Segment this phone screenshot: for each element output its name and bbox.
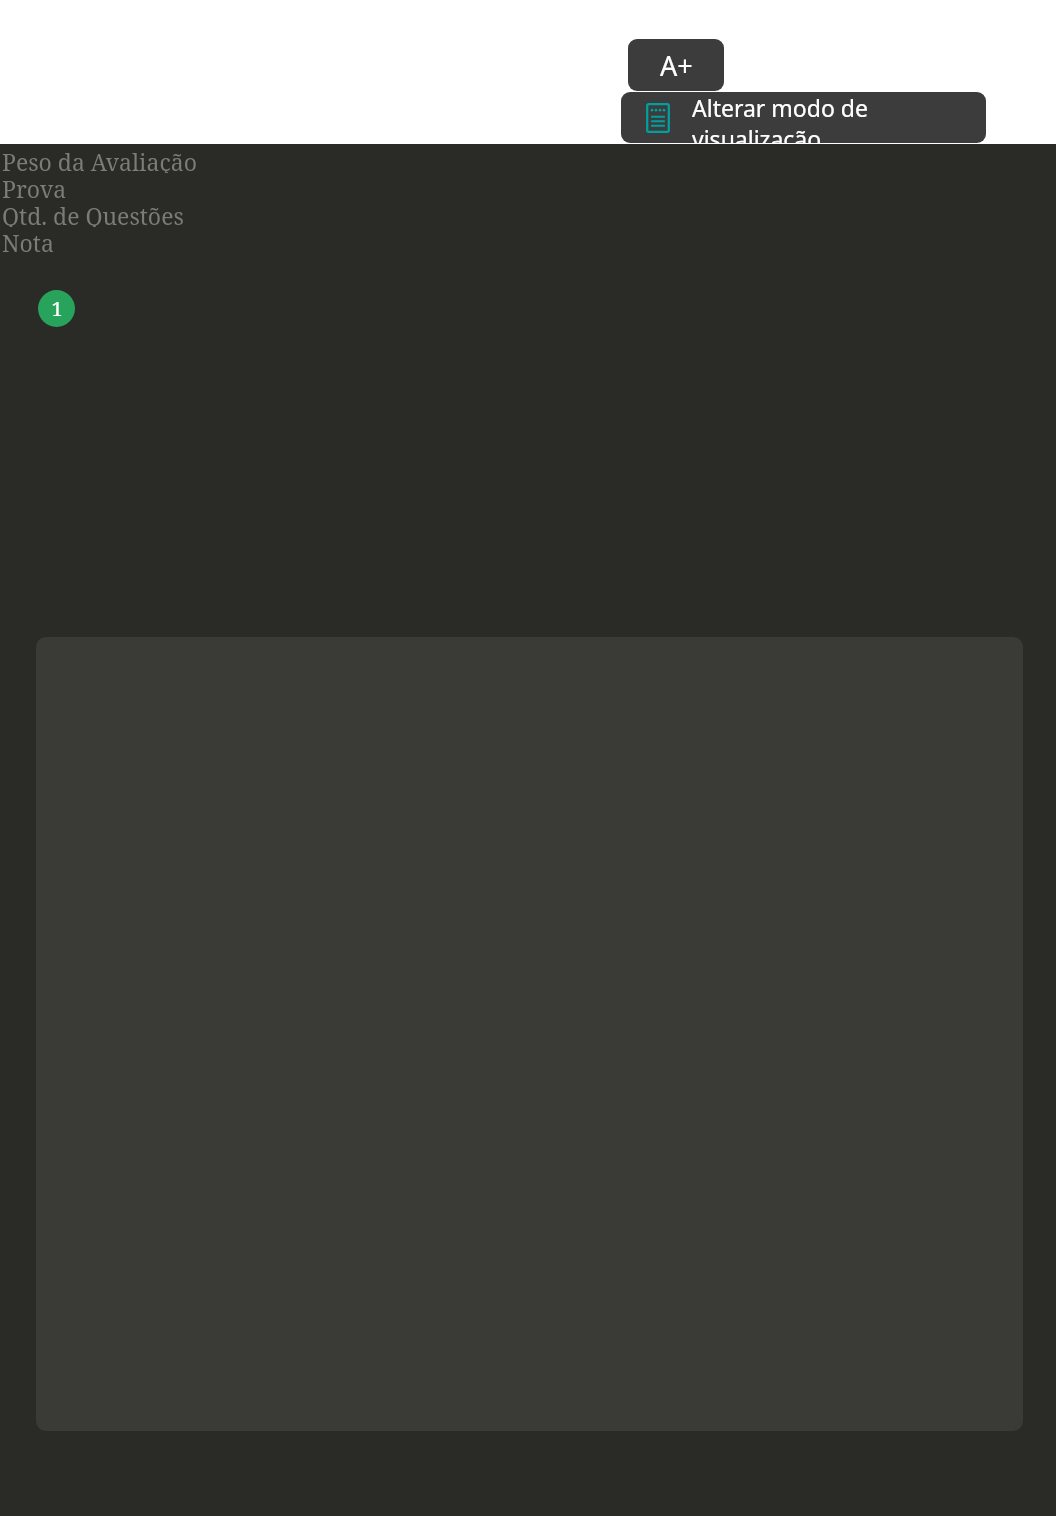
other: Alterar modo de visualização <box>643 103 673 133</box>
button[interactable]: Alterar modo de visualização <box>621 92 986 143</box>
staticText: Alterar modo de visualização <box>692 92 986 143</box>
staticText: 1 <box>51 295 63 322</box>
staticText: Peso da Avaliação <box>2 146 197 173</box>
button[interactable]: A+ <box>628 39 724 91</box>
staticText: A+ <box>660 47 693 84</box>
staticText: Nota <box>2 227 54 254</box>
staticText: Qtd. de Questões <box>2 200 184 227</box>
staticText: Prova <box>2 173 67 200</box>
button[interactable]: 1 <box>38 290 75 327</box>
